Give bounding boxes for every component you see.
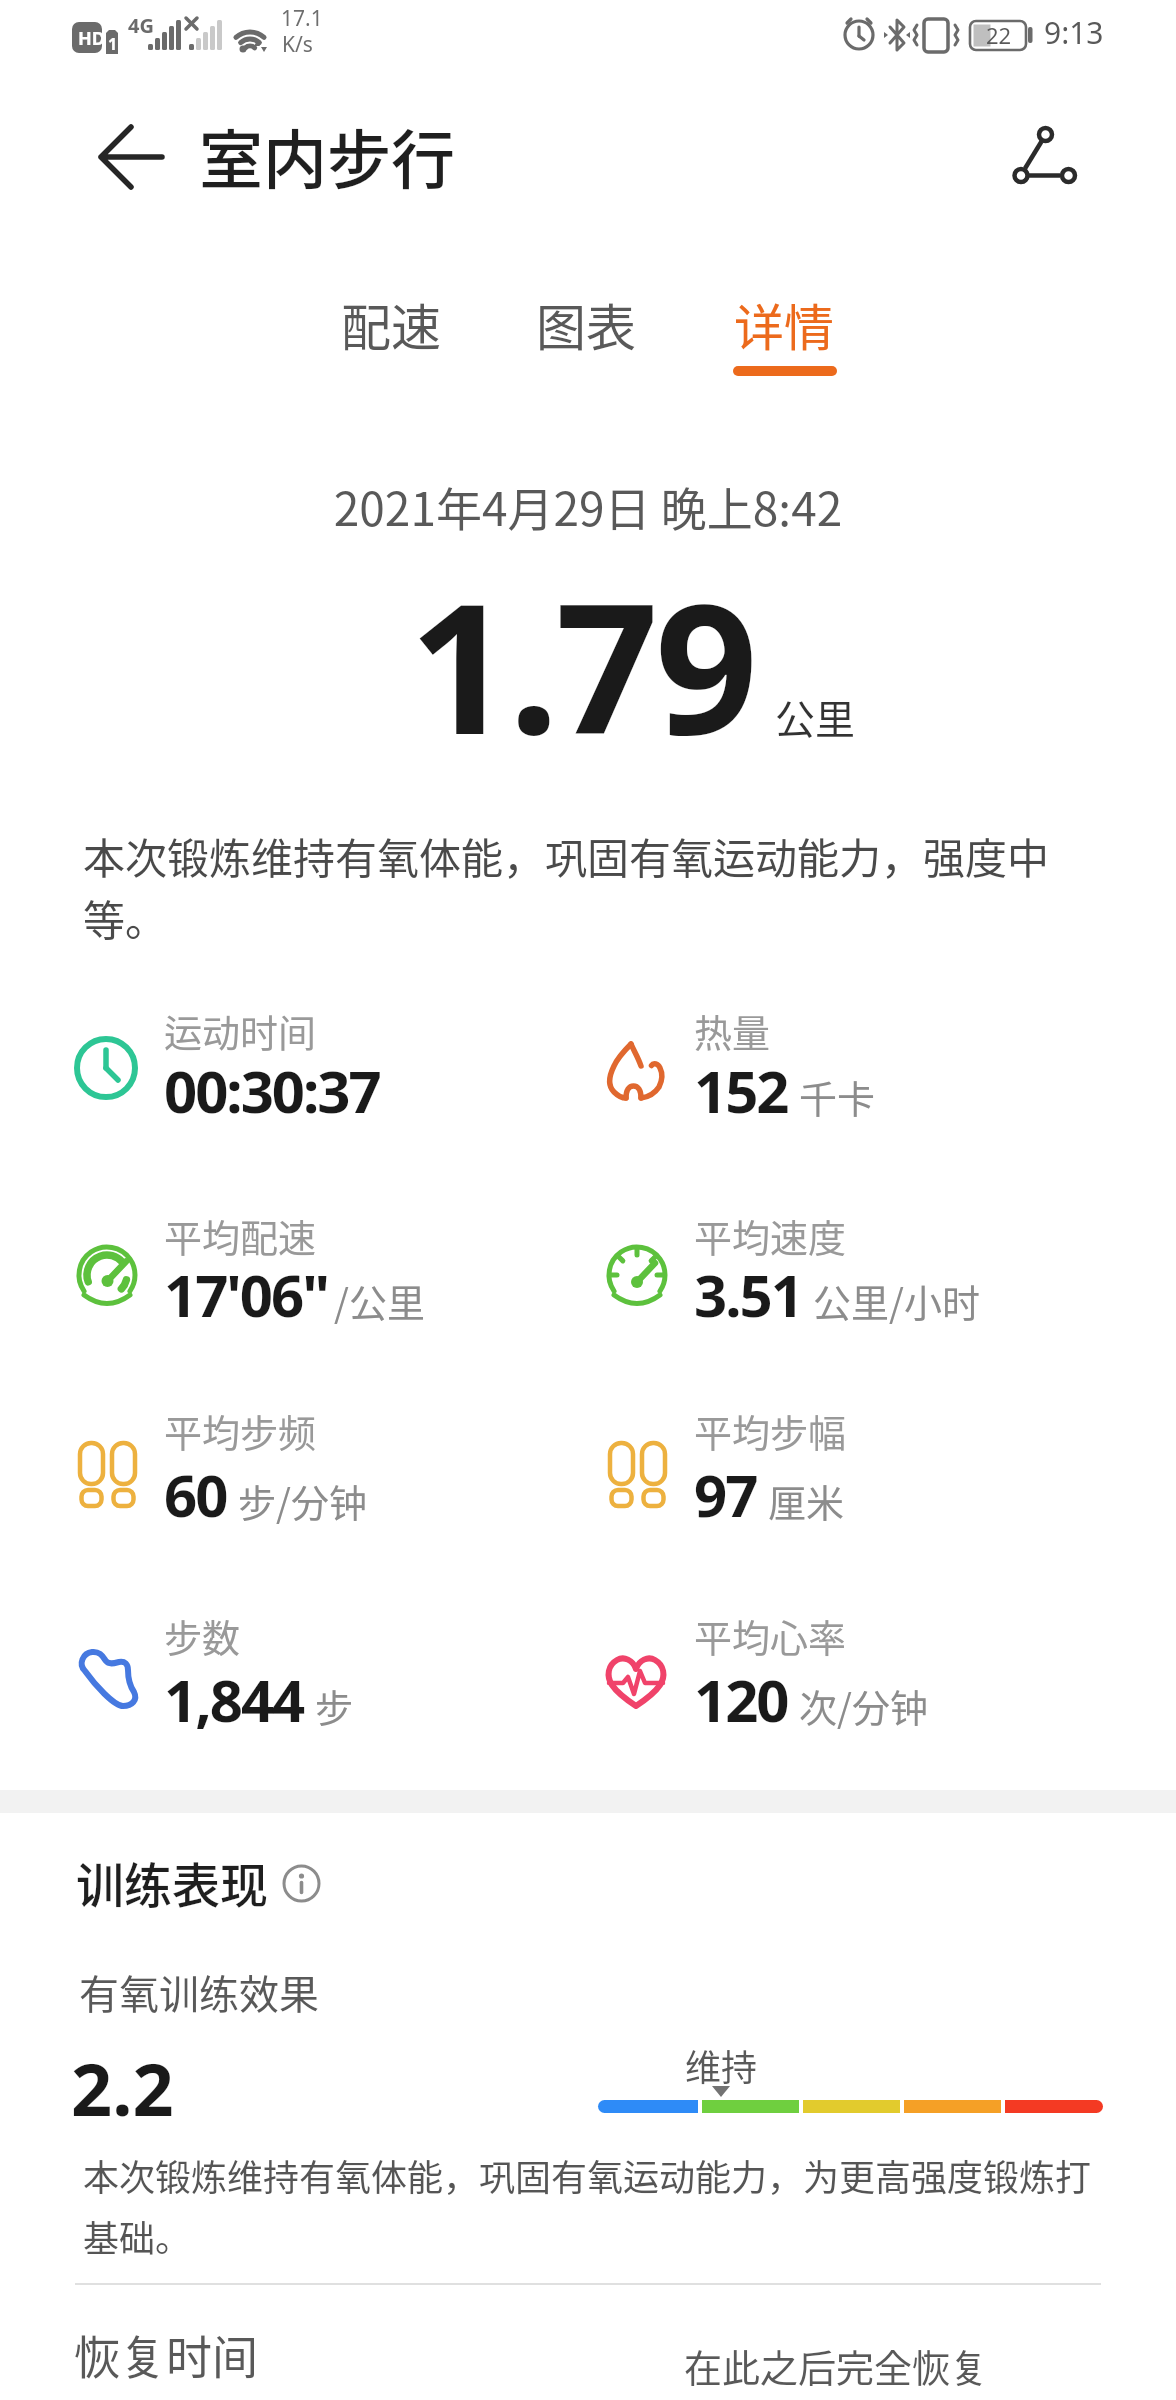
staticText: 训练表现 [76, 1847, 269, 1917]
staticText: 厘米 [768, 1473, 845, 1528]
staticText: 配速 [341, 288, 441, 360]
staticText: 1,844 [164, 1660, 304, 1739]
staticText: 17'06" [164, 1255, 328, 1334]
staticText: 室内步行 [199, 109, 455, 202]
button[interactable]: 恢复时间 [0, 2308, 1176, 2400]
staticText: 152 [694, 1051, 788, 1130]
button[interactable] [1005, 120, 1085, 190]
staticText: 17.1 [281, 4, 323, 33]
staticText: 图表 [536, 288, 636, 360]
staticText: 公里 [775, 688, 855, 746]
staticText: 平均速度 [694, 1208, 847, 1263]
staticText: 本次锻炼维持有氧体能，巩固有氧运动能力，强度中等。 [83, 825, 1073, 948]
staticText: 平均步频 [164, 1403, 317, 1458]
staticText: 热量 [694, 1003, 771, 1058]
staticText: 1 [108, 33, 118, 55]
staticText: 次/分钟 [799, 1678, 928, 1733]
staticText: 步数 [164, 1608, 241, 1663]
staticText: 120 [694, 1660, 788, 1739]
staticText: 步/分钟 [238, 1473, 367, 1528]
staticText: 60 [164, 1455, 227, 1534]
staticText: K/s [282, 30, 313, 59]
staticText: 公里/小时 [813, 1273, 980, 1328]
button[interactable] [282, 1864, 322, 1904]
staticText: 本次锻炼维持有氧体能，巩固有氧运动能力，为更高强度锻炼打基础。 [83, 2149, 1097, 2262]
staticText: 详情 [734, 288, 834, 360]
staticText: 平均配速 [164, 1208, 317, 1263]
staticText: 9:13 [1044, 12, 1104, 53]
staticText: 维持 [685, 2039, 758, 2091]
staticText: 2.2 [71, 2039, 174, 2137]
staticText: 平均心率 [694, 1608, 847, 1663]
button[interactable]: 图表 [511, 276, 661, 371]
staticText: /公里 [334, 1273, 425, 1328]
staticText: HD [78, 26, 105, 51]
staticText: 恢复时间 [74, 2321, 258, 2388]
staticText: 在此之后完全恢复 [684, 2338, 989, 2393]
button[interactable] [85, 122, 177, 192]
button[interactable]: 配速 [316, 276, 466, 371]
staticText: 千卡 [799, 1069, 876, 1124]
staticText: 有氧训练效果 [79, 1963, 319, 2021]
staticText: 97 [694, 1455, 757, 1534]
staticText: 4G [128, 12, 154, 39]
staticText: 步 [315, 1678, 354, 1733]
staticText: 00:30:37 [164, 1051, 380, 1130]
staticText: 平均步幅 [694, 1403, 847, 1458]
button[interactable]: 详情 [709, 276, 859, 371]
staticText: 3.51 [694, 1255, 802, 1334]
staticText: 运动时间 [164, 1003, 317, 1058]
staticText: 1.79 [409, 542, 755, 787]
staticText: 2021年4月29日 晚上8:42 [0, 473, 1176, 540]
staticText: 22 [986, 20, 1012, 50]
